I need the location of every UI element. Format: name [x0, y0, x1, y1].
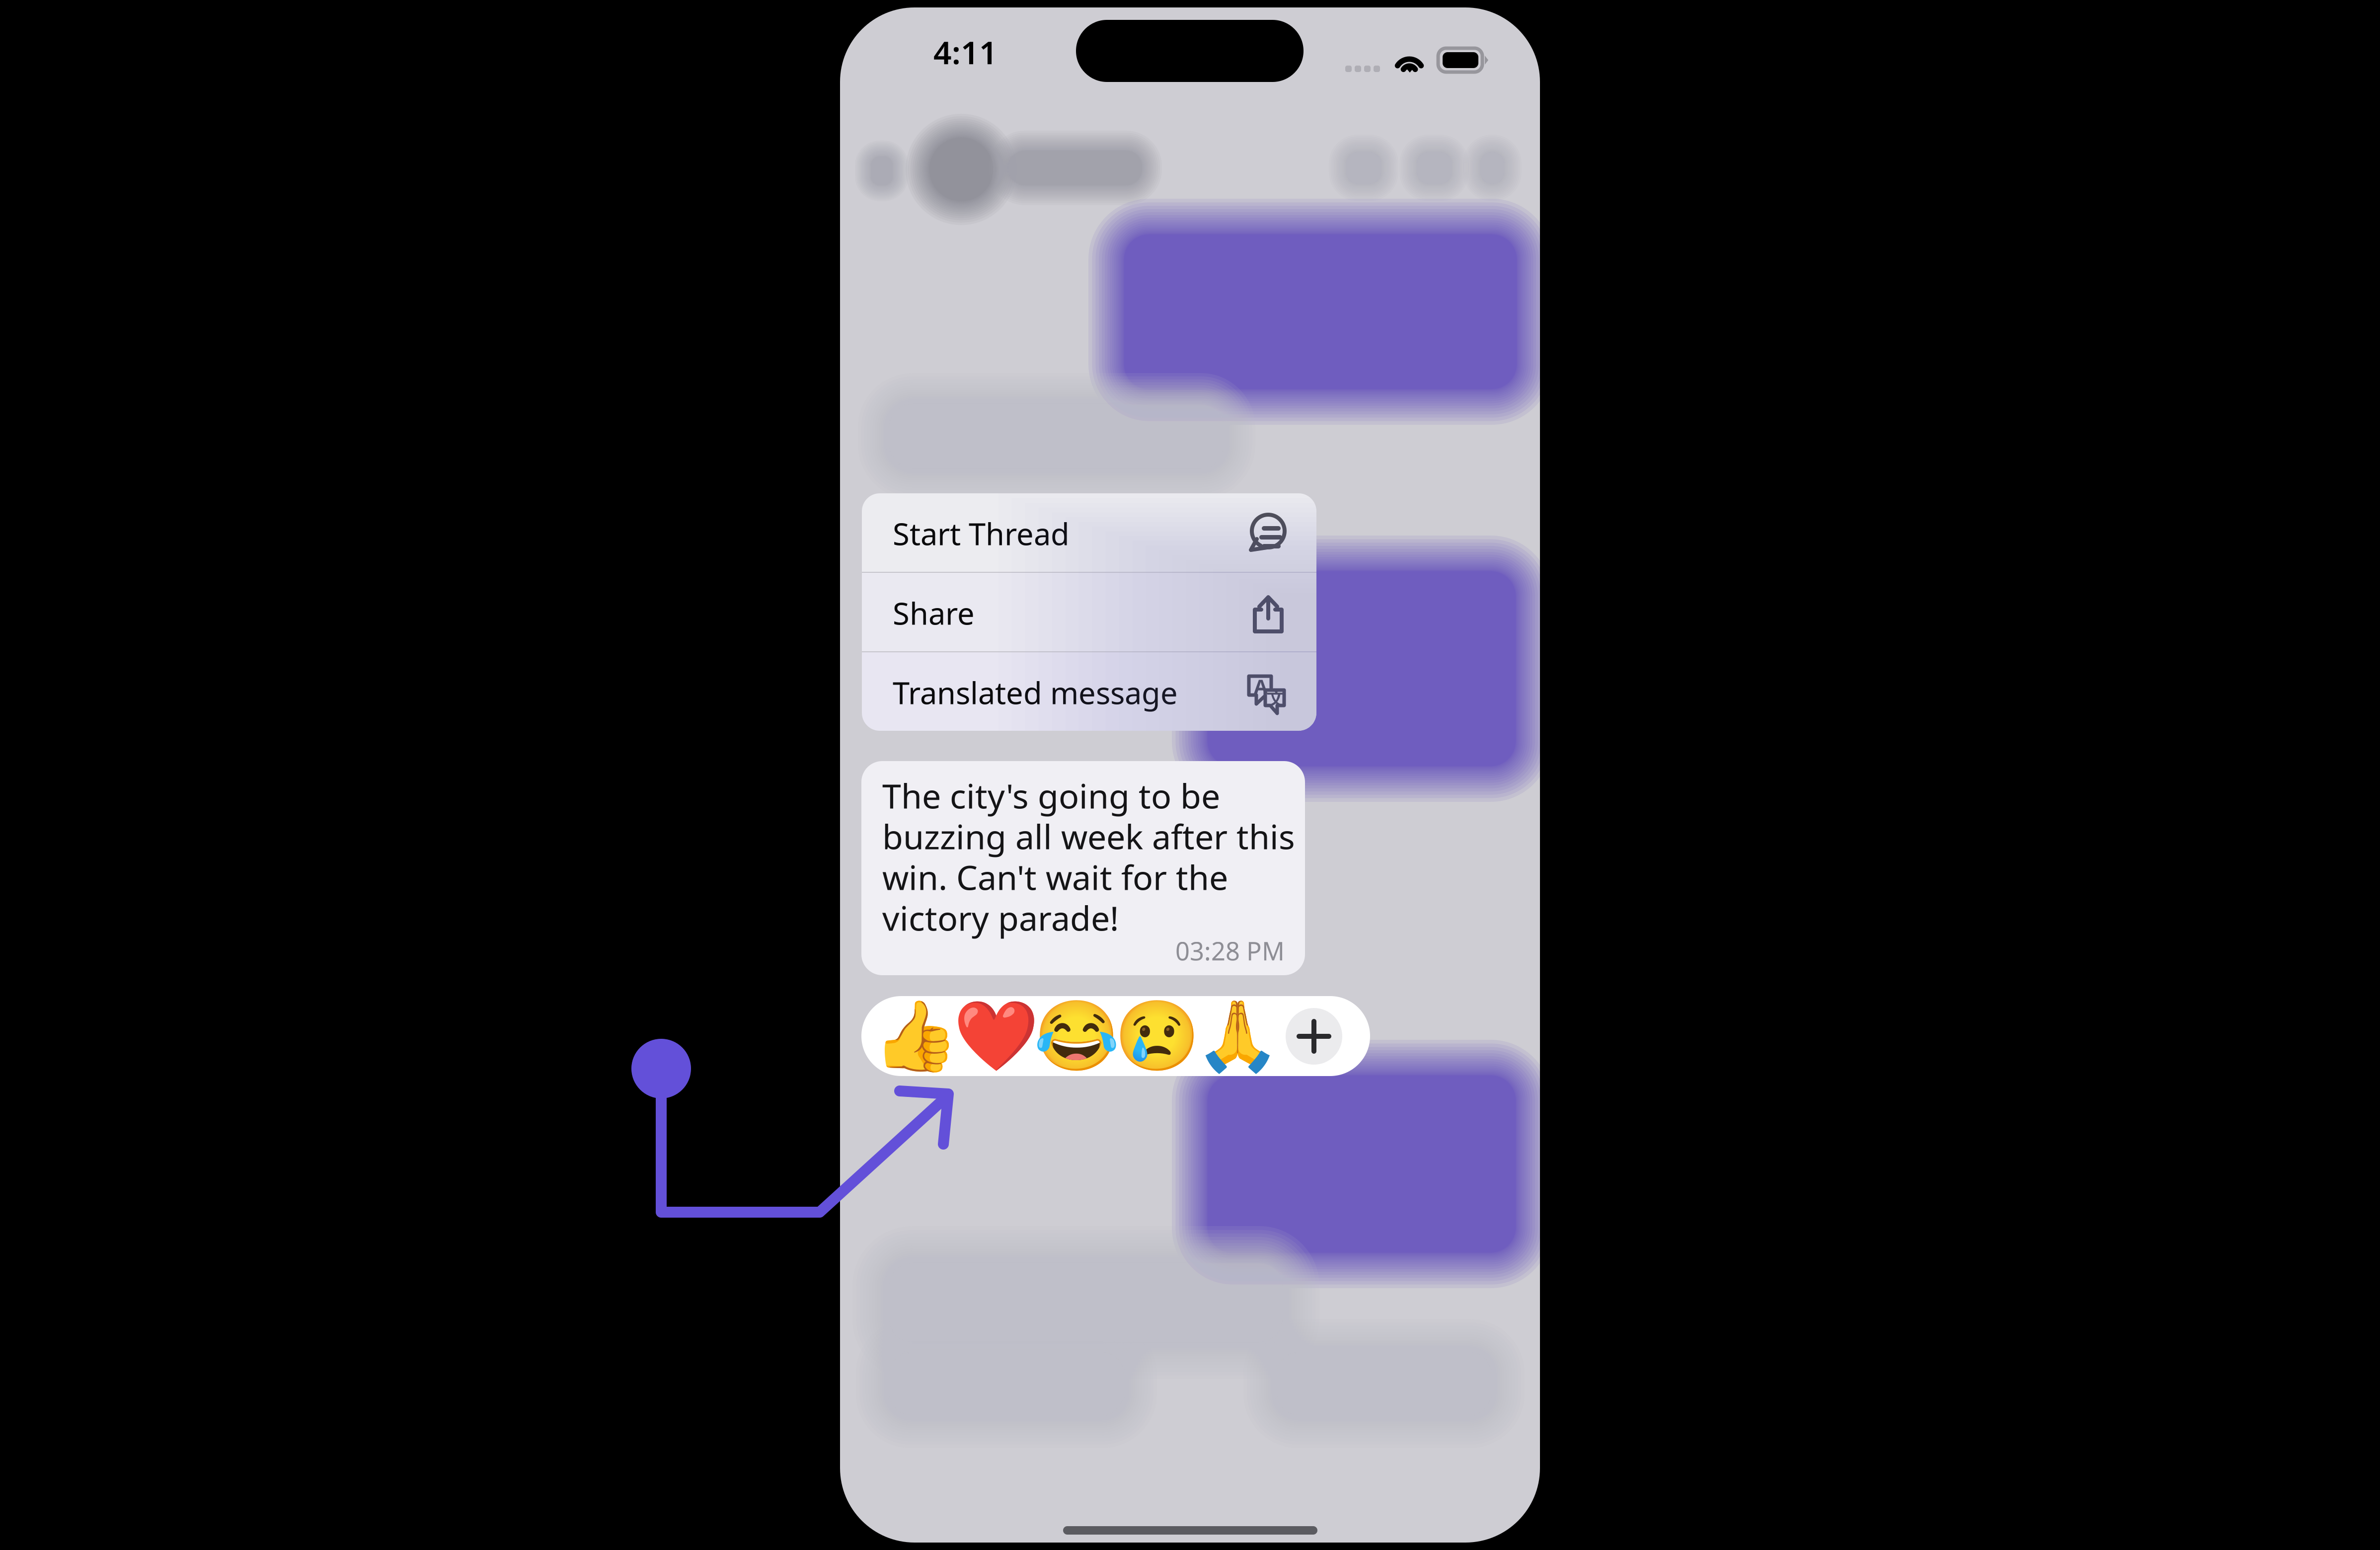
staticText: Share — [893, 593, 975, 633]
staticText: The city's going to be — [882, 773, 1220, 818]
staticText: 文 — [1267, 687, 1285, 710]
staticText: 👍 — [873, 997, 959, 1075]
staticText: Translated message — [893, 672, 1178, 713]
button[interactable]: Start Thread — [862, 493, 1316, 572]
button[interactable]: Love — [959, 996, 1033, 1076]
button[interactable]: Sad — [1120, 996, 1194, 1076]
staticText: win. Can't wait for the — [882, 854, 1228, 899]
staticText: 4:11 — [933, 31, 998, 73]
staticText: Start Thread — [893, 513, 1070, 554]
staticText: A — [1254, 673, 1268, 699]
staticText: 03:28 PM — [1175, 934, 1285, 967]
button[interactable]: Translated message — [862, 652, 1316, 731]
button[interactable]: Thumbs up — [878, 996, 953, 1076]
button[interactable]: Laugh — [1039, 996, 1114, 1076]
button[interactable]: Share — [862, 573, 1316, 651]
staticText: 🙏 — [1194, 997, 1280, 1075]
button[interactable]: Thanks — [1200, 996, 1275, 1076]
staticText: victory parade! — [882, 895, 1119, 940]
button[interactable]: More reactions — [1286, 1008, 1342, 1065]
staticText: buzzing all week after this — [882, 814, 1295, 859]
staticText: 😂 — [1034, 997, 1119, 1075]
staticText: 😢 — [1114, 997, 1200, 1075]
staticText: ❤️ — [953, 997, 1039, 1075]
